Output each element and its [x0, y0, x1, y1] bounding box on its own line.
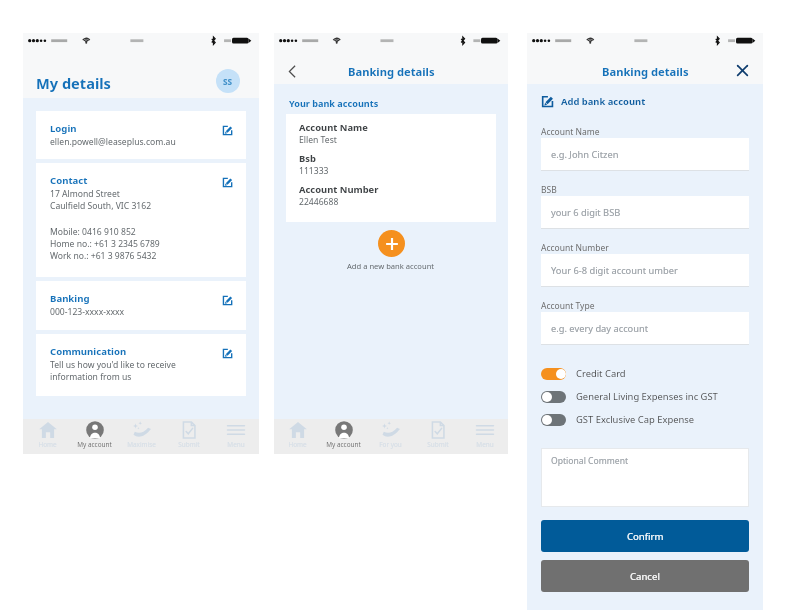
button[interactable]: Menu [461, 419, 508, 454]
button[interactable]: Submit [165, 419, 212, 454]
button[interactable]: Menu [212, 419, 259, 454]
staticText: Your bank accounts [289, 97, 379, 109]
staticText: Submit [178, 440, 200, 449]
staticText: For you [379, 440, 402, 449]
button[interactable]: Close [732, 60, 752, 80]
staticText: Mobile: 0416 910 852 [50, 226, 136, 238]
button[interactable]: Add bank account [541, 95, 646, 108]
staticText: ellen.powell@leaseplus.com.au [50, 136, 176, 148]
staticText: SS [223, 76, 233, 87]
staticText: 17 Almond Street [50, 188, 120, 200]
staticText: your 6 digit BSB [551, 206, 621, 219]
button[interactable]: Home [23, 419, 71, 454]
button[interactable]: Edit [218, 173, 236, 191]
staticText: Submit [427, 440, 449, 449]
staticText: information from us [50, 371, 132, 383]
button[interactable]: Submit [414, 419, 461, 454]
button[interactable]: Credit Card [541, 362, 749, 385]
button[interactable]: Confirm [541, 520, 749, 552]
button[interactable]: GST Exclusive Cap Expense [541, 408, 749, 431]
staticText: My account [326, 440, 361, 449]
button[interactable]: e.g. John Citzen [541, 138, 749, 171]
staticText: Banking details [602, 64, 689, 79]
staticText: My account [77, 440, 112, 449]
button[interactable]: Maximise [118, 419, 165, 454]
button[interactable]: Login [36, 111, 246, 159]
button[interactable]: My account [71, 419, 118, 454]
staticText: 22446688 [299, 196, 339, 208]
button[interactable]: Communication [36, 334, 246, 396]
staticText: Account Name [299, 121, 368, 134]
staticText: Communication [50, 345, 127, 358]
staticText: Cancel [630, 570, 660, 583]
staticText: Account Type [541, 300, 595, 312]
button[interactable]: My account [320, 419, 367, 454]
button[interactable]: Edit [218, 291, 236, 309]
button[interactable]: Back [281, 60, 303, 82]
button[interactable]: Banking [36, 281, 246, 330]
staticText: Caulfield South, VIC 3162 [50, 200, 152, 212]
button[interactable]: Edit [218, 344, 236, 362]
staticText: Account Name [541, 126, 600, 138]
staticText: e.g. John Citzen [551, 148, 619, 161]
staticText: Banking [50, 292, 90, 305]
button[interactable]: your 6 digit BSB [541, 196, 749, 229]
staticText: Work no.: +61 3 9876 5432 [50, 250, 157, 262]
staticText: e.g. every day account [551, 322, 649, 335]
staticText: General Living Expenses inc GST [576, 390, 718, 403]
staticText: Confirm [627, 530, 664, 543]
button[interactable]: Edit [218, 121, 236, 139]
staticText: Menu [227, 440, 245, 449]
staticText: Banking details [348, 64, 435, 79]
staticText: Add bank account [561, 95, 646, 108]
staticText: Optional Comment [551, 455, 629, 467]
staticText: Home no.: +61 3 2345 6789 [50, 238, 160, 250]
staticText: Account Number [541, 242, 609, 254]
staticText: Home [38, 440, 57, 449]
button[interactable]: Home [274, 419, 320, 454]
staticText: My details [36, 73, 111, 93]
staticText: Ellen Test [299, 134, 337, 146]
button[interactable]: For you [367, 419, 414, 454]
staticText: Home [288, 440, 307, 449]
staticText: Account Number [299, 183, 379, 196]
button[interactable]: Add a new bank account [274, 230, 508, 271]
button[interactable]: General Living Expenses inc GST [541, 385, 749, 408]
staticText: Menu [476, 440, 494, 449]
button[interactable]: e.g. every day account [541, 312, 749, 345]
button[interactable]: Profile [216, 69, 240, 93]
staticText: 111333 [299, 165, 329, 177]
staticText: BSB [541, 184, 557, 196]
staticText: Your 6-8 digit account umber [551, 264, 678, 277]
staticText: Bsb [299, 152, 316, 165]
button[interactable]: Optional Comment [541, 448, 749, 507]
staticText: Maximise [127, 440, 156, 449]
staticText: Credit Card [576, 367, 626, 380]
staticText: GST Exclusive Cap Expense [576, 413, 695, 426]
staticText: Tell us how you'd like to receive [50, 359, 176, 371]
staticText: Login [50, 122, 77, 135]
staticText: Contact [50, 174, 88, 187]
button[interactable]: Cancel [541, 560, 749, 592]
staticText: Add a new bank account [347, 261, 435, 271]
staticText: 000-123-xxxx-xxxx [50, 306, 125, 318]
button[interactable]: Contact [36, 163, 246, 277]
button[interactable]: Your 6-8 digit account umber [541, 254, 749, 287]
